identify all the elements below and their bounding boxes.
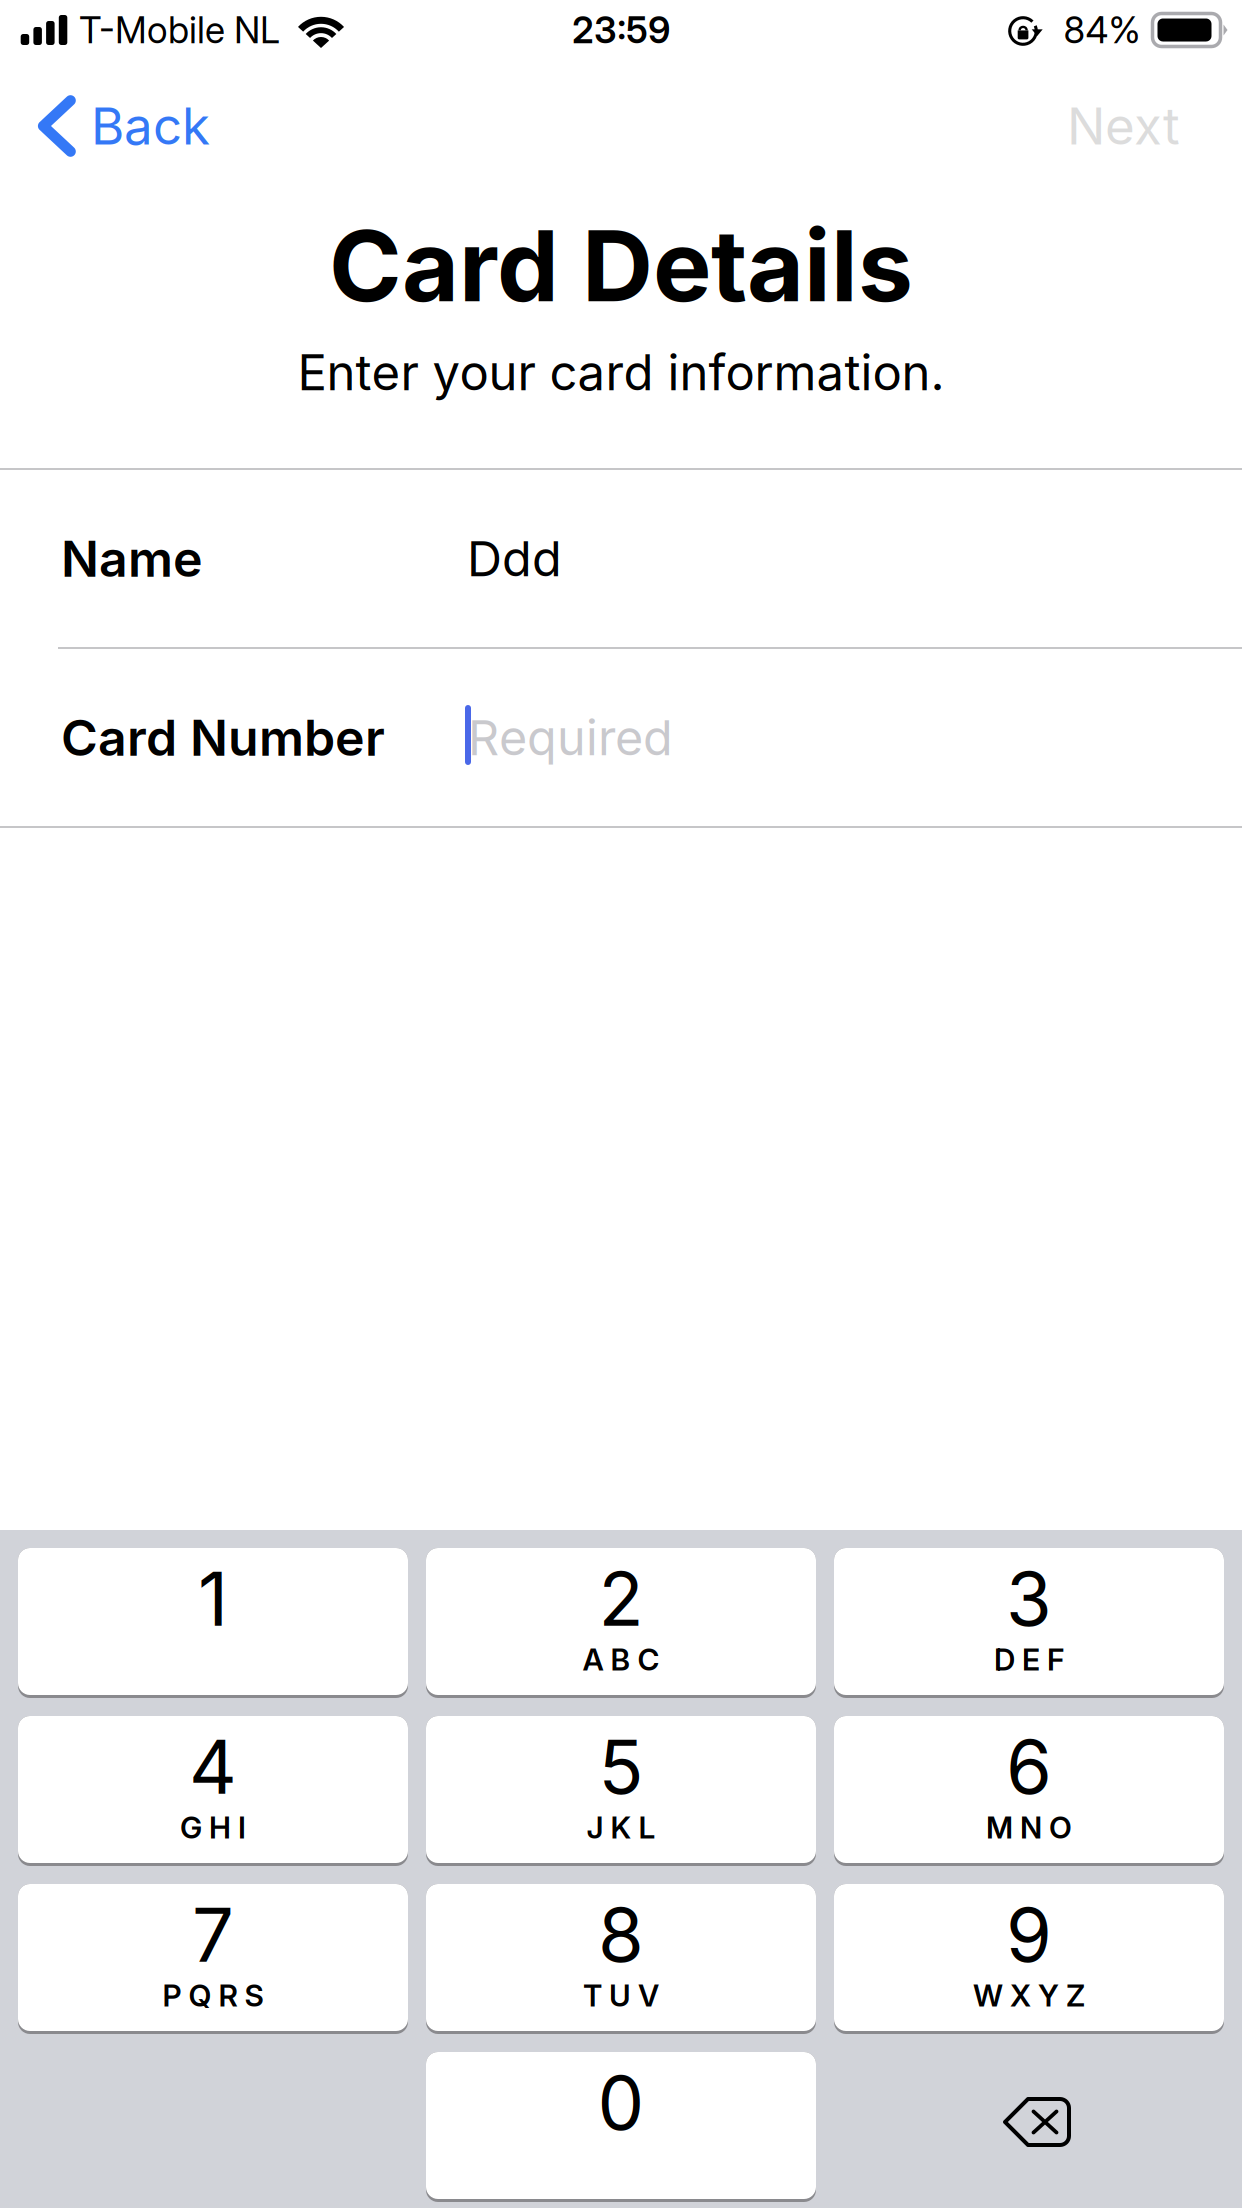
button[interactable]: 7	[18, 1884, 408, 2034]
staticText: 8	[598, 1890, 644, 1979]
button[interactable]: Name	[0, 470, 1242, 647]
staticText: Ddd	[467, 529, 562, 588]
button[interactable]: Next	[1045, 60, 1242, 192]
staticText: Required	[468, 708, 673, 767]
staticText: Card Number	[61, 707, 385, 768]
button[interactable]: 8	[426, 1884, 816, 2034]
staticText: 1	[198, 1554, 228, 1643]
staticText: D E F	[994, 1641, 1064, 1678]
staticText: T-Mobile NL	[79, 8, 280, 52]
button[interactable]: 5	[426, 1716, 816, 1866]
button[interactable]: 6	[834, 1716, 1224, 1866]
staticText: 84%	[1063, 8, 1140, 52]
staticText: Enter your card information.	[297, 343, 944, 402]
staticText: 3	[1006, 1554, 1052, 1643]
staticText: 5	[598, 1722, 643, 1811]
button[interactable]: 3	[834, 1548, 1224, 1698]
button[interactable]: Card Number	[0, 649, 1242, 826]
staticText: 6	[1006, 1722, 1052, 1811]
staticText: P Q R S	[162, 1977, 263, 2014]
staticText: J K L	[586, 1809, 655, 1846]
button[interactable]: 1	[18, 1548, 408, 1698]
button[interactable]: 0	[426, 2052, 816, 2202]
staticText: T U V	[583, 1977, 659, 2014]
staticText: Card Details	[329, 206, 913, 325]
staticText: Next	[1067, 95, 1180, 157]
staticText: 0	[597, 2058, 644, 2147]
staticText: 23:59	[572, 8, 670, 52]
staticText: M N O	[986, 1809, 1072, 1846]
staticText: G H I	[180, 1809, 246, 1846]
staticText: 9	[1006, 1890, 1052, 1979]
staticText: Name	[61, 528, 203, 589]
button[interactable]: 4	[18, 1716, 408, 1866]
button[interactable]: 9	[834, 1884, 1224, 2034]
button[interactable]: Back	[0, 60, 232, 192]
staticText: 4	[189, 1722, 237, 1811]
staticText: Back	[91, 95, 210, 157]
button[interactable]: Delete	[834, 2052, 1224, 2202]
staticText: 7	[192, 1890, 234, 1979]
staticText: W X Y Z	[973, 1977, 1085, 2014]
staticText: A B C	[582, 1641, 659, 1678]
button[interactable]: 2	[426, 1548, 816, 1698]
staticText: 2	[598, 1554, 643, 1643]
